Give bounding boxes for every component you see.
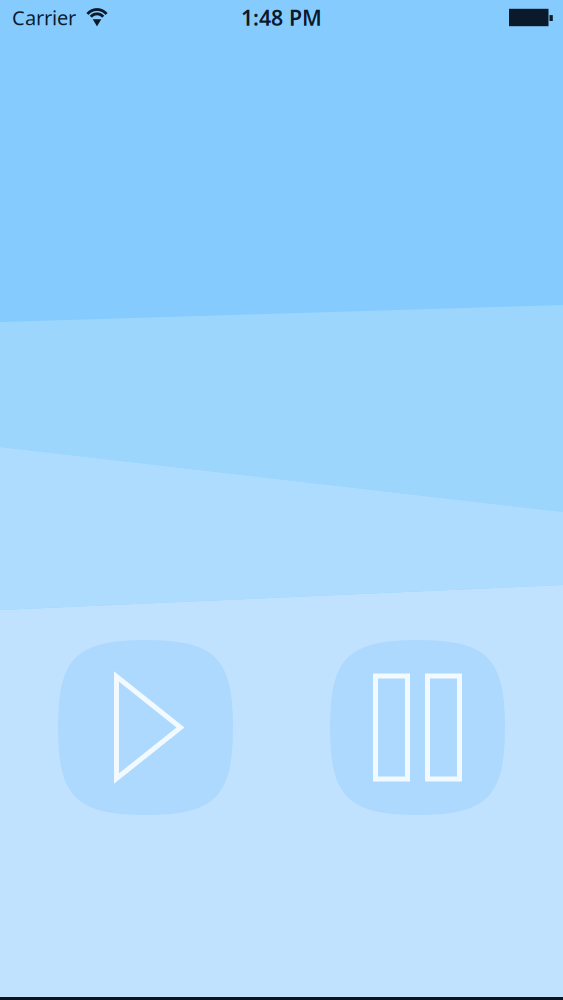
button[interactable]: Pause [330,640,505,815]
staticText: Carrier [12,4,76,31]
staticText: 1:48 PM [241,3,322,32]
button[interactable]: Play [58,640,233,815]
